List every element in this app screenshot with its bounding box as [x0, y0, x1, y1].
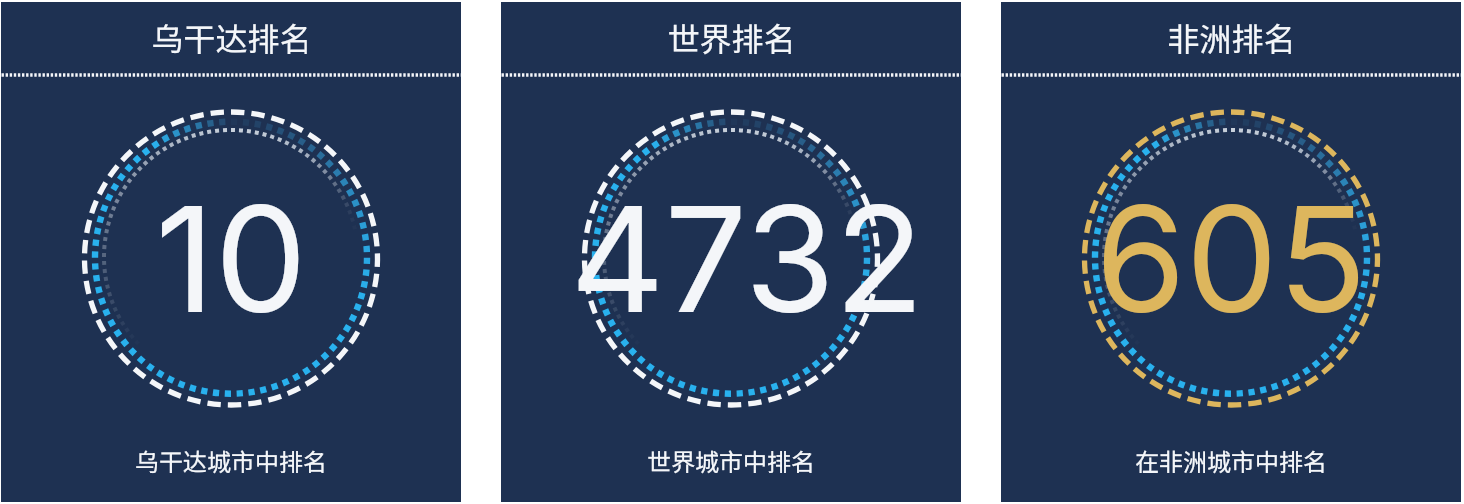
button[interactable]: 非洲排名 — [1001, 2, 1461, 502]
staticText: 10 — [155, 171, 307, 348]
staticText: 乌干达城市中排名 — [135, 443, 327, 478]
staticText: 世界排名 — [667, 14, 796, 60]
button[interactable]: 乌干达排名 — [1, 2, 461, 502]
button[interactable]: 世界排名 — [501, 2, 961, 502]
staticText: 非洲排名 — [1167, 14, 1296, 60]
staticText: 605 — [1095, 171, 1367, 348]
staticText: 4732 — [570, 171, 924, 348]
staticText: 在非洲城市中排名 — [1135, 443, 1327, 478]
staticText: 世界城市中排名 — [647, 443, 815, 478]
staticText: 乌干达排名 — [151, 14, 312, 60]
